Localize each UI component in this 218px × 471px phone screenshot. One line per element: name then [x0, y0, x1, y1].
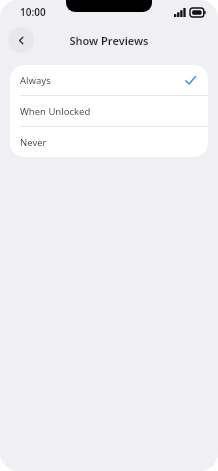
- staticText: 10:00: [20, 5, 46, 19]
- staticText: Never: [20, 136, 47, 149]
- staticText: Always: [20, 74, 51, 87]
- button[interactable]: When Unlocked: [10, 96, 208, 126]
- button[interactable]: Never: [10, 127, 208, 157]
- staticText: Show Previews: [69, 33, 149, 48]
- staticText: When Unlocked: [20, 105, 91, 118]
- button[interactable]: Always: [10, 65, 208, 95]
- button[interactable]: Back: [8, 27, 34, 53]
